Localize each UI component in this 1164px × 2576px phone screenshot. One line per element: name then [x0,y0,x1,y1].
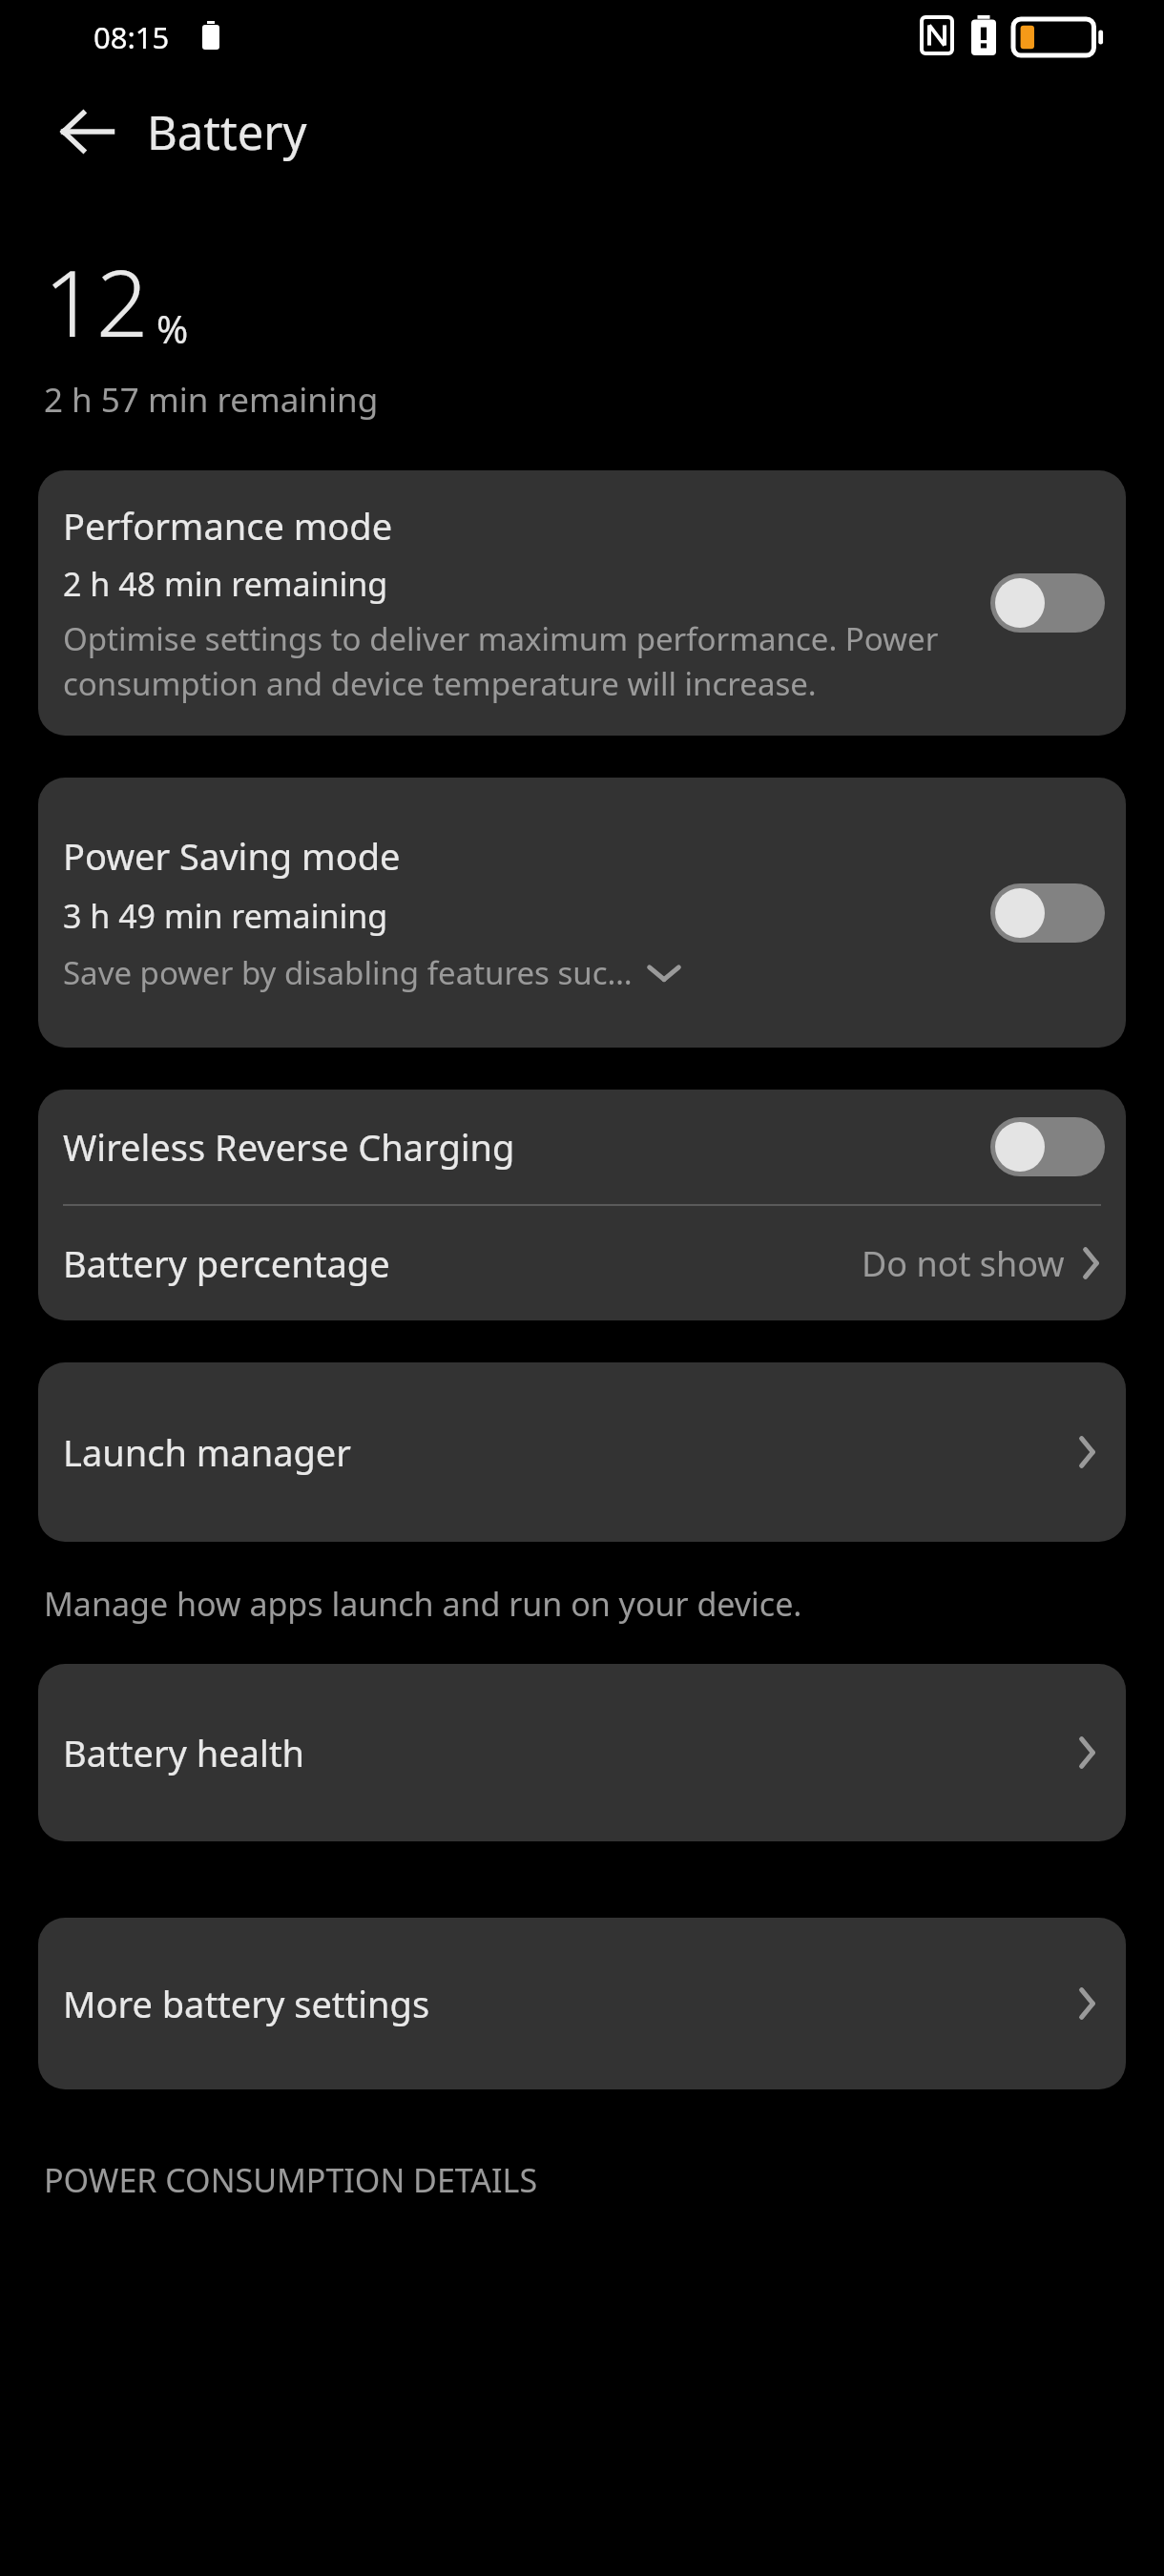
staticText: Save power by disabling features suc… [63,951,633,994]
staticText: 2 h 48 min remaining [63,562,388,606]
staticText: POWER CONSUMPTION DETAILS [44,2158,538,2202]
button[interactable]: Launch manager [38,1362,1126,1542]
button[interactable]: Back [53,97,122,166]
staticText: Manage how apps launch and run on your d… [44,1582,802,1626]
button[interactable]: Battery percentage [38,1206,1126,1320]
staticText: 3 h 49 min remaining [63,894,388,938]
staticText: Wireless Reverse Charging [63,1122,990,1172]
staticText: 2 h 57 min remaining [44,377,379,423]
staticText: % [156,302,189,354]
button[interactable]: Power Saving mode toggle [990,883,1105,943]
staticText: More battery settings [63,1979,1072,2028]
button[interactable]: More battery settings [38,1918,1126,2089]
button[interactable]: Performance mode [38,470,1126,736]
staticText: 08:15 [94,17,170,57]
button[interactable]: Wireless Reverse Charging [38,1090,1126,1204]
button[interactable]: Power Saving mode [38,778,1126,1048]
staticText: Power Saving mode [63,831,401,881]
button[interactable]: Wireless Reverse Charging toggle [990,1117,1105,1176]
staticText: Performance mode [63,501,393,551]
staticText: 12 [44,239,149,364]
button[interactable]: Battery health [38,1664,1126,1841]
staticText: Do not show [862,1240,1065,1287]
staticText: Battery [147,100,307,164]
staticText: Launch manager [63,1427,1072,1477]
staticText: Optimise settings to deliver maximum per… [63,617,975,705]
button[interactable]: Performance mode toggle [990,573,1105,633]
staticText: Battery percentage [63,1238,862,1288]
staticText: Battery health [63,1728,1072,1777]
